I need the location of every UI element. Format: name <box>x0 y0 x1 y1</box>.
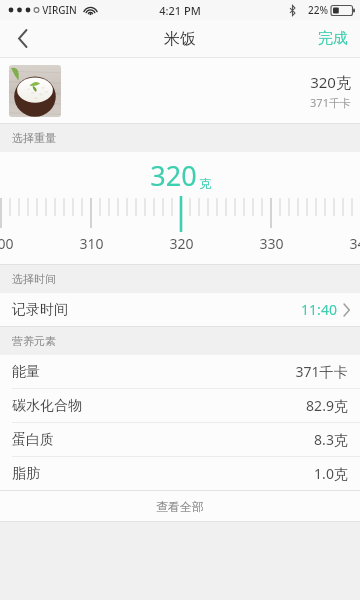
staticText: 能量 <box>12 363 40 381</box>
staticText: 4:21 PM <box>159 3 201 18</box>
button[interactable]: 300 <box>0 194 360 264</box>
staticText: 碳水化合物 <box>12 397 82 415</box>
staticText: 371千卡 <box>310 95 351 110</box>
staticText: 82.9克 <box>306 396 348 415</box>
staticText: 记录时间 <box>12 301 68 319</box>
staticText: 310 <box>79 234 104 253</box>
button[interactable]: 查看全部 <box>0 491 360 521</box>
staticText: 营养元素 <box>12 334 56 348</box>
staticText: 选择时间 <box>12 272 56 286</box>
staticText: 8.3克 <box>314 430 348 449</box>
staticText: 320克 <box>310 72 351 92</box>
staticText: 371千卡 <box>295 362 348 381</box>
staticText: VIRGIN <box>42 3 77 17</box>
staticText: 330 <box>259 234 284 253</box>
button[interactable]: 记录时间 <box>0 293 360 326</box>
button[interactable]: 碳水化合物 <box>0 389 360 422</box>
staticText: 22% <box>308 3 328 17</box>
staticText: 完成 <box>318 29 348 48</box>
staticText: 蛋白质 <box>12 431 54 449</box>
staticText: 选择重量 <box>12 131 56 145</box>
staticText: 查看全部 <box>156 499 204 514</box>
button[interactable]: 320克 <box>0 58 360 123</box>
staticText: 320 <box>169 234 194 253</box>
button[interactable]: 完成 <box>306 20 360 57</box>
staticText: 11:40 <box>301 300 337 319</box>
button[interactable]: 蛋白质 <box>0 423 360 456</box>
button[interactable]: 能量 <box>0 355 360 388</box>
staticText: 克 <box>199 176 211 191</box>
staticText: 320 <box>150 157 197 194</box>
button[interactable]: Back <box>0 20 46 57</box>
staticText: 300 <box>0 234 14 253</box>
staticText: 1.0克 <box>314 464 348 483</box>
staticText: 脂肪 <box>12 465 40 483</box>
staticText: 340 <box>349 234 360 253</box>
staticText: 米饭 <box>164 29 196 49</box>
button[interactable]: 脂肪 <box>0 457 360 490</box>
